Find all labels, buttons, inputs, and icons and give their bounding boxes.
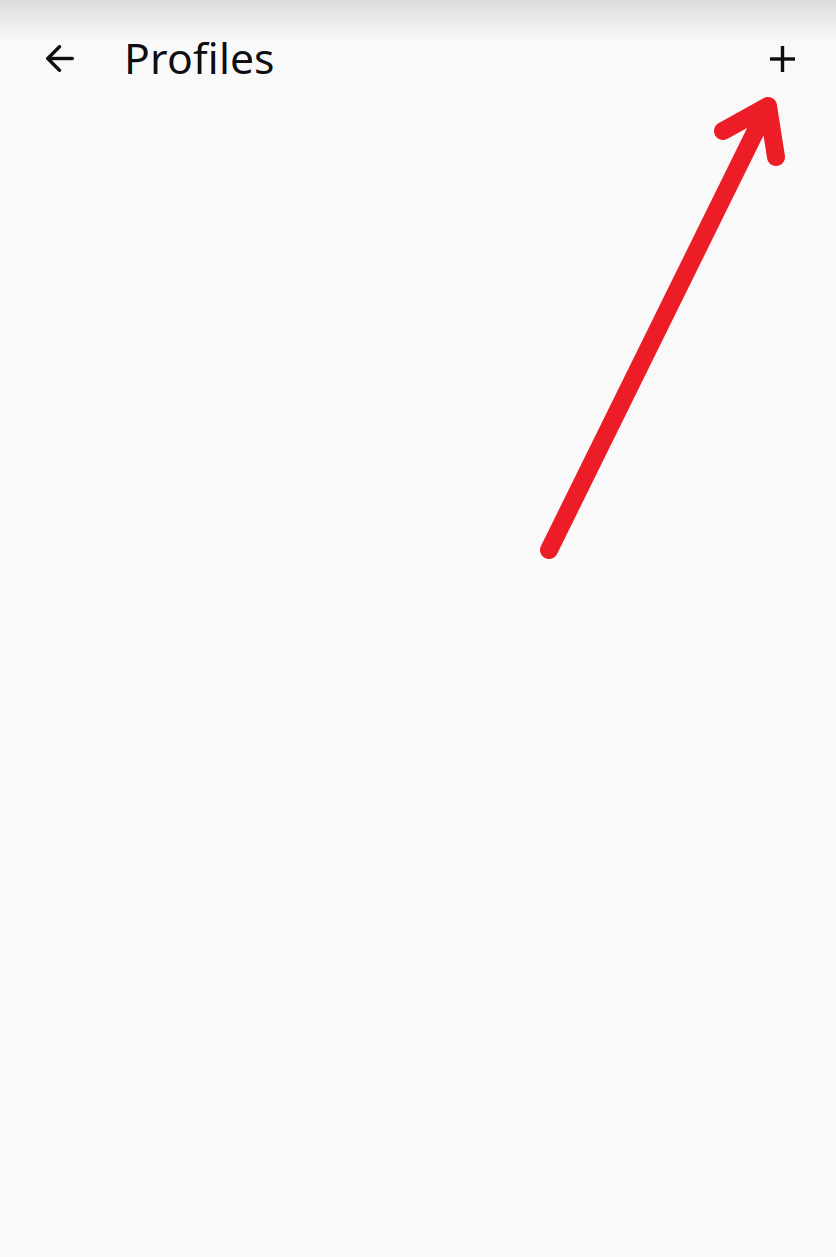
button[interactable]: Back: [23, 21, 97, 95]
button[interactable]: Add profile: [745, 22, 819, 96]
staticText: Profiles: [124, 29, 274, 86]
